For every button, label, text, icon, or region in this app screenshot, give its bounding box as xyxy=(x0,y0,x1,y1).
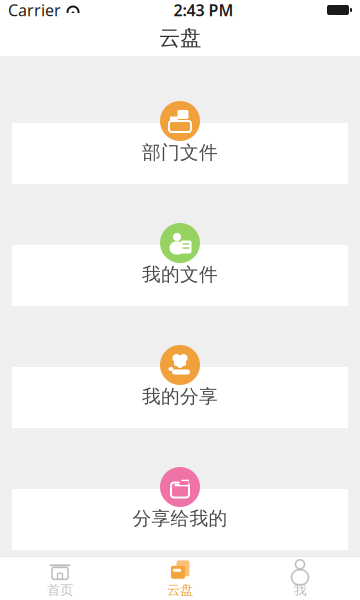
button[interactable]: 我的分享 xyxy=(0,345,360,428)
staticText: Carrier xyxy=(8,0,61,21)
staticText: 我 xyxy=(293,582,306,598)
staticText: 云盘 xyxy=(167,582,193,598)
button[interactable]: 我的文件 xyxy=(0,223,360,306)
button[interactable]: 我 xyxy=(240,557,360,600)
button[interactable]: 首页 xyxy=(0,557,120,600)
button[interactable]: 云盘 xyxy=(120,557,240,600)
staticText: 2:43 PM xyxy=(173,0,233,21)
staticText: 云盘 xyxy=(159,25,201,51)
staticText: 首页 xyxy=(47,582,73,598)
staticText: 我的文件 xyxy=(142,263,218,286)
button[interactable]: 部门文件 xyxy=(0,101,360,184)
staticText: 分享给我的 xyxy=(132,507,227,530)
staticText: 部门文件 xyxy=(142,141,218,164)
staticText: 我的分享 xyxy=(142,385,218,408)
button[interactable]: 分享给我的 xyxy=(0,467,360,550)
